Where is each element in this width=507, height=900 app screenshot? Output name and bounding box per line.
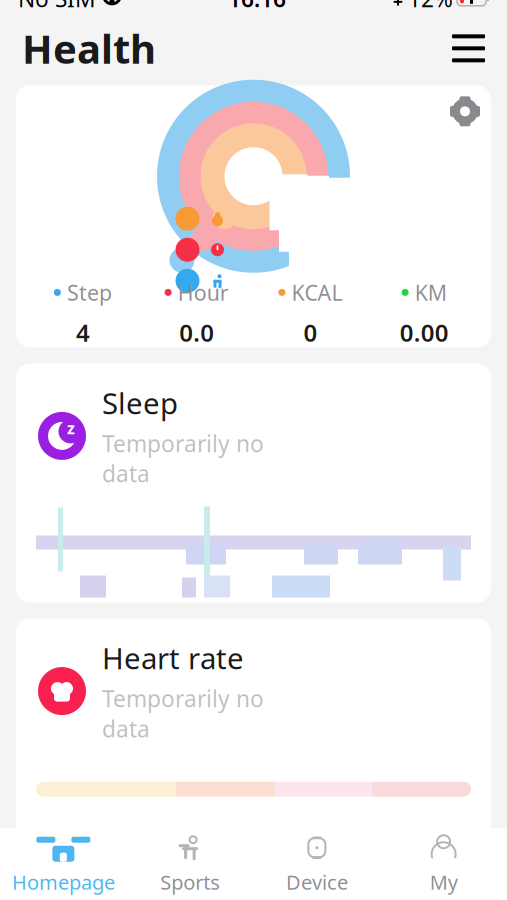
staticText: Step <box>67 278 112 306</box>
button[interactable]: Menu <box>444 26 493 70</box>
button[interactable]: z <box>16 363 491 602</box>
staticText: 0.00 <box>400 317 449 348</box>
button[interactable]: Heart rate <box>16 618 491 843</box>
button[interactable]: Women's health <box>16 859 491 900</box>
staticText: Sleep <box>102 383 178 422</box>
staticText: Device <box>286 869 348 895</box>
staticText: My <box>430 869 458 895</box>
staticText: Hour <box>178 278 229 306</box>
staticText: KM <box>415 278 447 306</box>
staticText: Temporarily no data <box>102 428 264 488</box>
staticText: Women's health <box>102 878 325 900</box>
staticText: Sports <box>160 869 220 895</box>
staticText: Health <box>22 22 156 75</box>
button[interactable]: Device <box>253 828 380 900</box>
button[interactable]: Homepage <box>0 828 127 900</box>
button[interactable]: Settings <box>439 85 491 137</box>
staticText: 16:16 <box>228 0 286 13</box>
staticText: No SIM <box>18 0 96 13</box>
staticText: z <box>67 417 75 438</box>
staticText: Homepage <box>12 869 115 895</box>
staticText: Heart rate <box>102 638 244 677</box>
staticText: 12% <box>408 0 453 13</box>
staticText: Temporarily no data <box>102 683 264 744</box>
staticText: 4 <box>76 317 90 348</box>
button[interactable]: My <box>380 828 507 900</box>
staticText: 0 <box>303 317 317 348</box>
staticText: 0.0 <box>179 317 214 348</box>
staticText: KCAL <box>291 278 342 306</box>
button[interactable]: Sports <box>127 828 254 900</box>
